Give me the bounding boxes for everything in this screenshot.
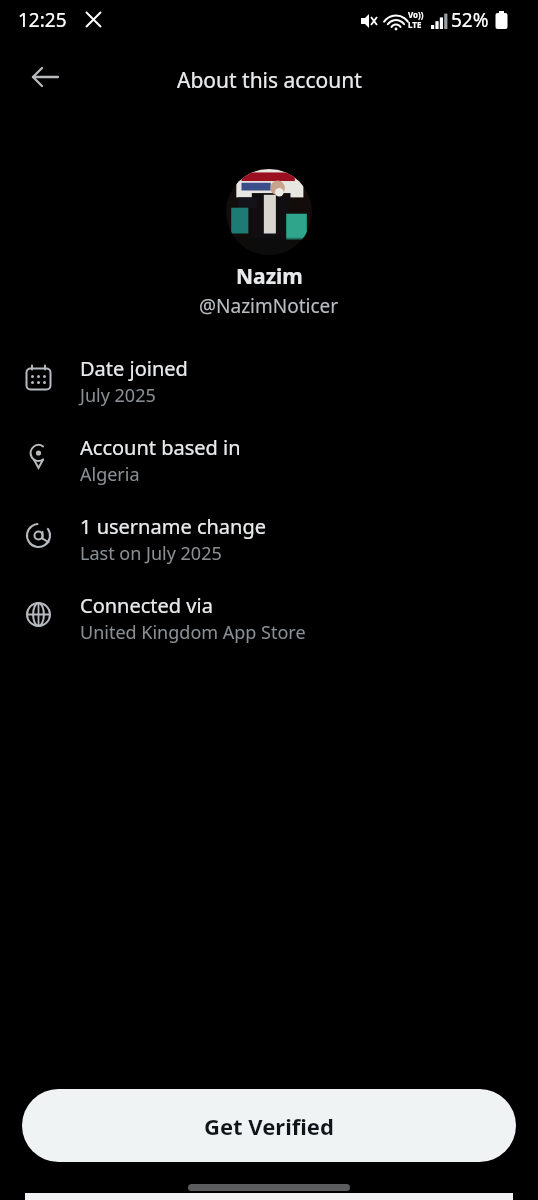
staticText: About this account bbox=[177, 66, 362, 95]
staticText: Get Verified bbox=[204, 1111, 334, 1141]
button[interactable]: Connected via bbox=[0, 584, 538, 663]
button[interactable]: Date joined bbox=[0, 347, 538, 426]
staticText: United Kingdom App Store bbox=[80, 620, 306, 645]
button[interactable]: Profile photo bbox=[226, 169, 312, 255]
staticText: 1 username change bbox=[80, 513, 266, 540]
staticText: Connected via bbox=[80, 592, 213, 619]
staticText: July 2025 bbox=[80, 383, 156, 408]
staticText: Nazim bbox=[236, 262, 303, 291]
staticText: Account based in bbox=[80, 434, 241, 461]
button[interactable]: Get Verified bbox=[22, 1089, 516, 1162]
staticText: @NazimNoticer bbox=[199, 293, 339, 319]
staticText: Algeria bbox=[80, 462, 140, 487]
staticText: LTE bbox=[408, 19, 422, 30]
staticText: Vo)) bbox=[408, 9, 424, 20]
staticText: 52% bbox=[451, 7, 489, 33]
button[interactable]: Account based in bbox=[0, 426, 538, 505]
staticText: 12:25 bbox=[18, 7, 67, 33]
staticText: Last on July 2025 bbox=[80, 541, 222, 566]
button[interactable]: Username changes bbox=[0, 505, 538, 584]
button[interactable]: Back bbox=[22, 54, 68, 100]
staticText: Date joined bbox=[80, 355, 188, 382]
